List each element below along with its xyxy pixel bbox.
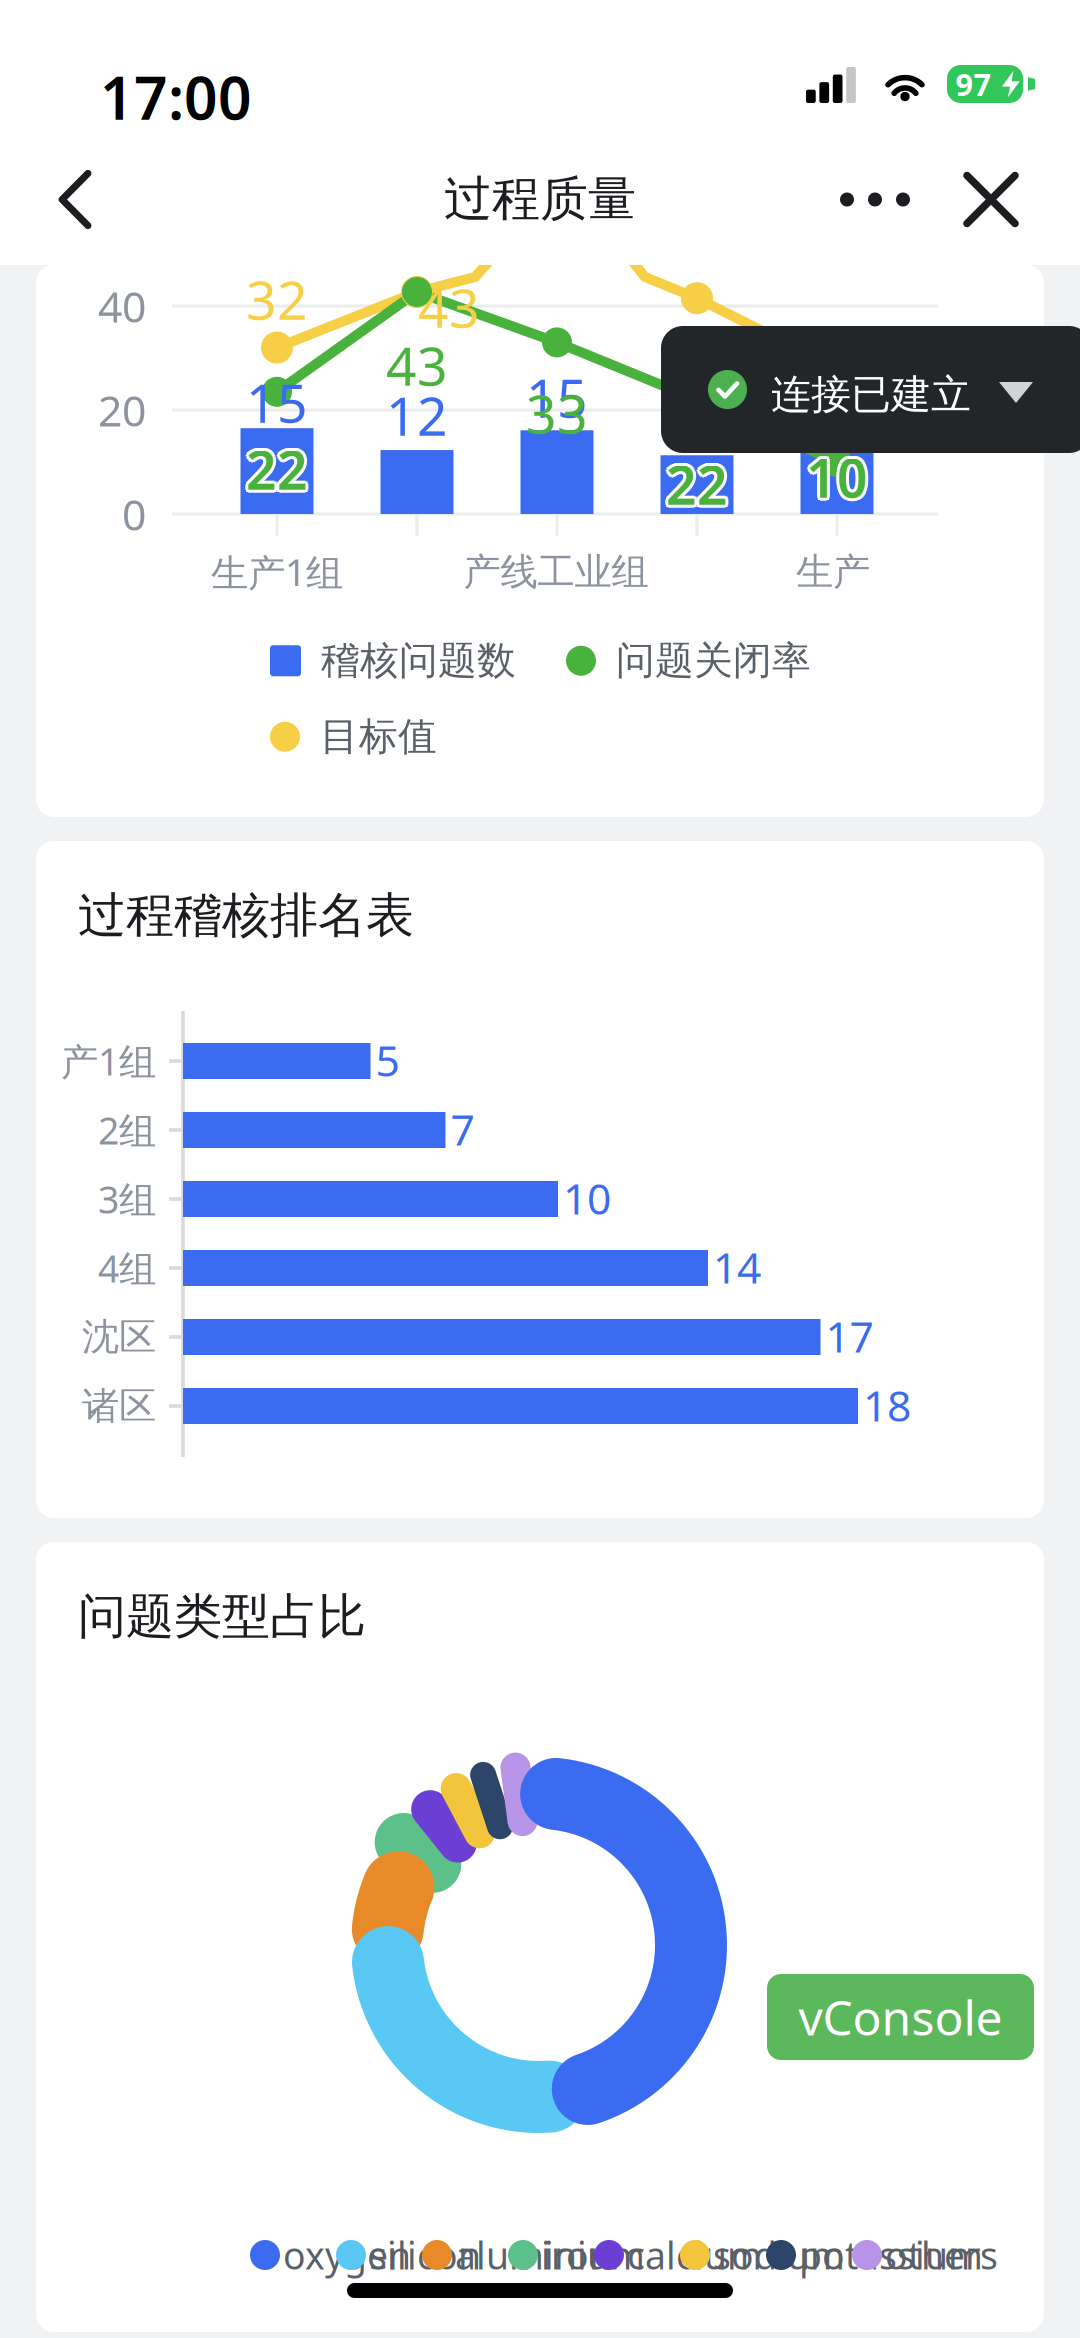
staticText: calcium (627, 2230, 762, 2280)
staticText: 14 (713, 1239, 761, 1295)
staticText: 22 (669, 449, 731, 519)
staticText: 22 (663, 449, 725, 519)
staticText: 过程质量 (444, 169, 636, 228)
staticText: 产1组 (61, 1036, 156, 1086)
staticText: sodium (713, 2230, 845, 2280)
staticText: 22 (244, 436, 306, 507)
staticText: others (885, 2230, 998, 2280)
staticText: 22 (668, 446, 730, 517)
staticText: 33 (526, 378, 588, 448)
staticText: 0 (122, 486, 146, 542)
staticText: 97 (955, 64, 991, 104)
staticText: 22 (248, 436, 310, 507)
staticText: 连接已建立 (771, 370, 971, 419)
staticText: 22 (664, 446, 726, 517)
button[interactable]: Back (22, 133, 128, 265)
staticText: oxygen (283, 2230, 411, 2280)
staticText: 10 (808, 444, 870, 515)
staticText: iron (541, 2230, 612, 2280)
button[interactable]: vConsole (767, 1974, 1034, 2060)
staticText: 10 (806, 442, 868, 512)
staticText: 22 (246, 437, 308, 507)
staticText: 2组 (98, 1105, 156, 1155)
staticText: 22 (666, 449, 728, 519)
button[interactable]: More options (806, 133, 944, 265)
staticText: 22 (244, 431, 306, 502)
staticText: 问题类型占比 (78, 1587, 366, 1646)
staticText: 产线工业组 (463, 549, 648, 595)
staticText: 10 (806, 439, 868, 509)
staticText: 43 (418, 272, 480, 342)
staticText: 10 (804, 444, 866, 515)
staticText: 17 (825, 1308, 873, 1364)
staticText: 10 (804, 439, 866, 510)
staticText: 4组 (98, 1243, 156, 1293)
staticText: 20 (98, 382, 146, 438)
staticText: 22 (668, 451, 730, 522)
staticText: potassium (799, 2230, 983, 2280)
staticText: 10 (563, 1170, 611, 1226)
staticText: silicon (369, 2230, 481, 2280)
staticText: 17:00 (100, 58, 252, 136)
staticText: aluminium (455, 2230, 645, 2280)
staticText: vConsole (798, 1985, 1002, 2049)
staticText: 10 (808, 439, 870, 510)
staticText: 10 (809, 442, 871, 512)
staticText: 22 (666, 452, 728, 522)
staticText: 过程稽核排名表 (78, 886, 414, 945)
staticText: 7 (450, 1101, 474, 1157)
staticText: 22 (246, 431, 308, 501)
staticText: 22 (243, 434, 305, 504)
staticText: 10 (803, 442, 865, 512)
staticText: 沈区 (82, 1314, 156, 1360)
staticText: 22 (249, 434, 311, 504)
staticText: 生产 (796, 549, 870, 595)
staticText: 生产1组 (211, 547, 343, 597)
staticText: 32 (246, 264, 308, 334)
staticText: 43 (386, 330, 448, 400)
staticText: 15 (246, 367, 308, 437)
staticText: 15 (526, 362, 588, 432)
staticText: 22 (246, 434, 308, 504)
staticText: 22 (248, 431, 310, 502)
staticText: 稽核问题数 (321, 637, 516, 684)
button[interactable]: Close (930, 133, 1052, 265)
staticText: 12 (386, 380, 448, 450)
staticText: 10 (806, 445, 868, 515)
staticText: 40 (98, 278, 146, 334)
staticText: 22 (666, 446, 728, 516)
staticText: 5 (375, 1032, 399, 1088)
staticText: 问题关闭率 (616, 637, 811, 684)
staticText: 22 (664, 451, 726, 522)
staticText: 诸区 (82, 1383, 156, 1429)
staticText: 3组 (98, 1174, 156, 1224)
staticText: 目标值 (320, 713, 437, 760)
staticText: 18 (863, 1377, 911, 1433)
